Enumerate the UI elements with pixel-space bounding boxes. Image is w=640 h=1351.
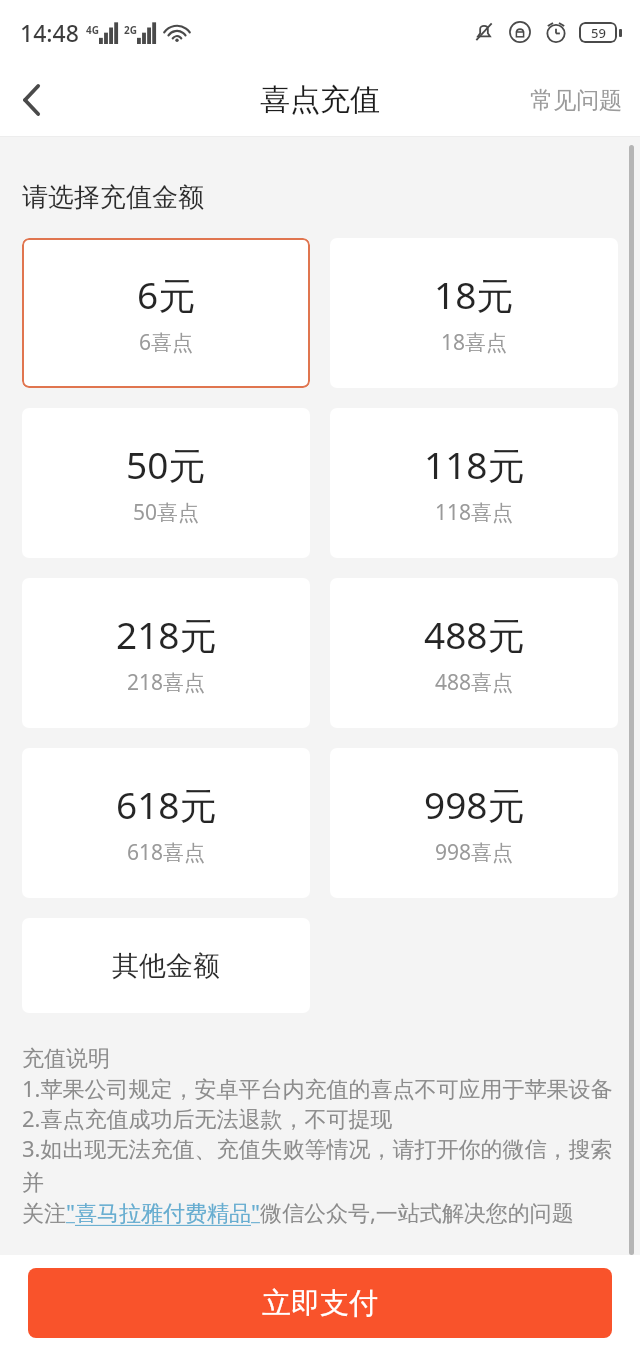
button[interactable]: 218元 xyxy=(22,578,310,728)
staticText: 3.如出现无法充值、充值失败等情况，请打开你的微信，搜索并 xyxy=(22,1133,618,1197)
staticText: 2.喜点充值成功后无法退款，不可提现 xyxy=(22,1103,393,1133)
staticText: 488喜点 xyxy=(435,668,514,697)
button[interactable]: 6元 xyxy=(22,238,310,388)
staticText: 其他金额 xyxy=(112,949,220,983)
button[interactable]: 立即支付 xyxy=(28,1268,612,1338)
button[interactable]: 118元 xyxy=(330,408,618,558)
staticText: 充值说明 xyxy=(22,1045,110,1073)
button[interactable]: Back xyxy=(0,68,64,132)
staticText: 118元 xyxy=(424,439,525,490)
staticText: 4G xyxy=(86,23,99,37)
button[interactable]: 998元 xyxy=(330,748,618,898)
button[interactable]: 其他金额 xyxy=(22,918,310,1013)
staticText: 18喜点 xyxy=(441,328,508,357)
staticText: 218元 xyxy=(116,609,217,660)
button[interactable]: 18元 xyxy=(330,238,618,388)
staticText: 2G xyxy=(124,23,137,37)
staticText: 6喜点 xyxy=(139,328,194,357)
staticText: 喜点充值 xyxy=(260,81,380,119)
staticText: 998元 xyxy=(424,779,525,830)
staticText: 998喜点 xyxy=(435,838,514,867)
staticText: 618元 xyxy=(116,779,217,830)
staticText: 6元 xyxy=(137,269,196,320)
staticText: 立即支付 xyxy=(262,1285,378,1322)
staticText: 59 xyxy=(591,24,606,42)
staticText: 50喜点 xyxy=(133,498,200,527)
staticText: 请选择充值金额 xyxy=(22,181,204,214)
button[interactable]: 常见问题 xyxy=(512,72,640,129)
staticText: 118喜点 xyxy=(435,498,514,527)
staticText: 1.苹果公司规定，安卓平台内充值的喜点不可应用于苹果设备 xyxy=(22,1073,613,1103)
staticText: 常见问题 xyxy=(530,86,622,115)
button[interactable]: 50元 xyxy=(22,408,310,558)
staticText: 50元 xyxy=(126,439,206,490)
staticText: 18元 xyxy=(434,269,514,320)
staticText: 618喜点 xyxy=(127,838,206,867)
staticText: 14:48 xyxy=(20,17,79,48)
button[interactable]: 618元 xyxy=(22,748,310,898)
button[interactable]: 关注"喜马拉雅付费精品"微信公众号,一站式解决您的问题 xyxy=(22,1197,574,1227)
button[interactable]: 488元 xyxy=(330,578,618,728)
staticText: 488元 xyxy=(424,609,525,660)
staticText: 218喜点 xyxy=(127,668,206,697)
